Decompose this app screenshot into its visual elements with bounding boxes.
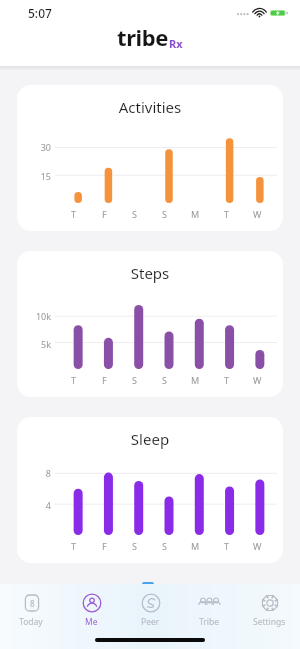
staticText: T bbox=[224, 208, 230, 220]
button[interactable]: Activities bbox=[17, 85, 283, 231]
staticText: W bbox=[253, 540, 262, 552]
staticText: M bbox=[191, 208, 200, 220]
staticText: Settings bbox=[253, 616, 286, 628]
staticText: T bbox=[224, 540, 230, 552]
staticText: 15 bbox=[17, 170, 51, 182]
button[interactable]: Sleep bbox=[17, 417, 283, 563]
button[interactable]: Steps bbox=[17, 251, 283, 397]
staticText: 30 bbox=[17, 141, 51, 153]
button[interactable]: Me bbox=[63, 590, 119, 630]
staticText: tribe bbox=[117, 22, 168, 52]
staticText: M bbox=[191, 374, 200, 386]
staticText: M bbox=[191, 540, 200, 552]
staticText: S bbox=[132, 374, 137, 386]
staticText: 10k bbox=[17, 310, 51, 322]
staticText: 4 bbox=[17, 499, 51, 511]
staticText: 8 bbox=[17, 467, 51, 479]
staticText: Tribe bbox=[199, 616, 220, 628]
staticText: 8 bbox=[30, 598, 35, 609]
staticText: Peer bbox=[141, 616, 160, 628]
staticText: F bbox=[102, 374, 107, 386]
staticText: S bbox=[162, 374, 167, 386]
staticText: S bbox=[162, 540, 167, 552]
staticText: F bbox=[102, 208, 107, 220]
button[interactable]: Settings bbox=[241, 590, 297, 630]
staticText: Today bbox=[19, 616, 43, 628]
staticText: S bbox=[132, 208, 137, 220]
staticText: F bbox=[102, 540, 107, 552]
button[interactable]: Tribe bbox=[181, 590, 237, 630]
staticText: Activities bbox=[17, 97, 283, 117]
staticText: S bbox=[132, 540, 137, 552]
staticText: Me bbox=[85, 616, 98, 628]
staticText: Rx bbox=[169, 36, 183, 51]
staticText: T bbox=[224, 374, 230, 386]
staticText: 5:07 bbox=[28, 5, 52, 21]
button[interactable]: Today bbox=[3, 590, 59, 630]
staticText: T bbox=[71, 208, 77, 220]
staticText: T bbox=[71, 540, 77, 552]
staticText: W bbox=[253, 374, 262, 386]
staticText: W bbox=[253, 208, 262, 220]
staticText: T bbox=[71, 374, 77, 386]
staticText: 5k bbox=[17, 338, 51, 350]
button[interactable]: Peer bbox=[122, 590, 178, 630]
staticText: S bbox=[162, 208, 167, 220]
staticText: Sleep bbox=[17, 429, 283, 449]
staticText: Steps bbox=[17, 263, 283, 283]
